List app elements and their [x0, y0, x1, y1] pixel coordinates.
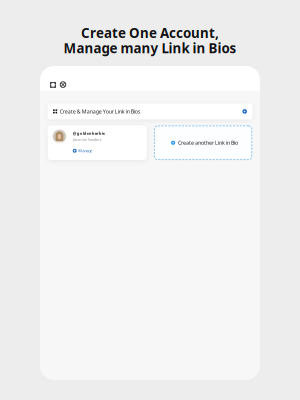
staticText: @goldenbarbie — [73, 131, 105, 136]
staticText: Create & Manage Your Link in Bios — [60, 108, 141, 115]
staticText: Create One Account, — [81, 24, 219, 42]
button[interactable]: Create & Manage Your Link in Bios — [47, 103, 252, 119]
staticText: Create another Link in Bio — [178, 139, 238, 146]
button[interactable]: @goldenbarbie — [48, 125, 147, 160]
button[interactable]: Scan code — [50, 82, 56, 88]
button[interactable]: Create another Link in Bio — [154, 125, 252, 160]
button[interactable]: Account — [60, 81, 66, 88]
staticText: Jasmine Sanders — [73, 137, 102, 142]
staticText: Manage — [78, 148, 92, 153]
staticText: Manage many Link in Bios — [63, 39, 236, 57]
